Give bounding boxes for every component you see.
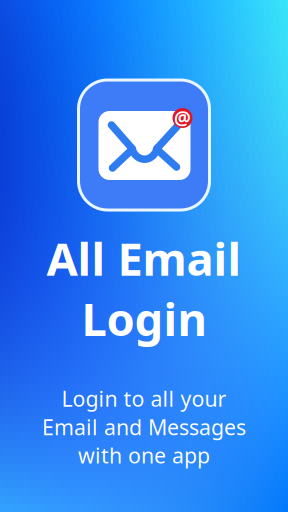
staticText: @ bbox=[174, 106, 191, 130]
staticText: Login to all your bbox=[61, 384, 226, 413]
staticText: with one app bbox=[78, 441, 210, 469]
staticText: Login bbox=[81, 288, 206, 348]
staticText: Email and Messages bbox=[42, 413, 246, 441]
staticText: All Email bbox=[46, 228, 241, 288]
